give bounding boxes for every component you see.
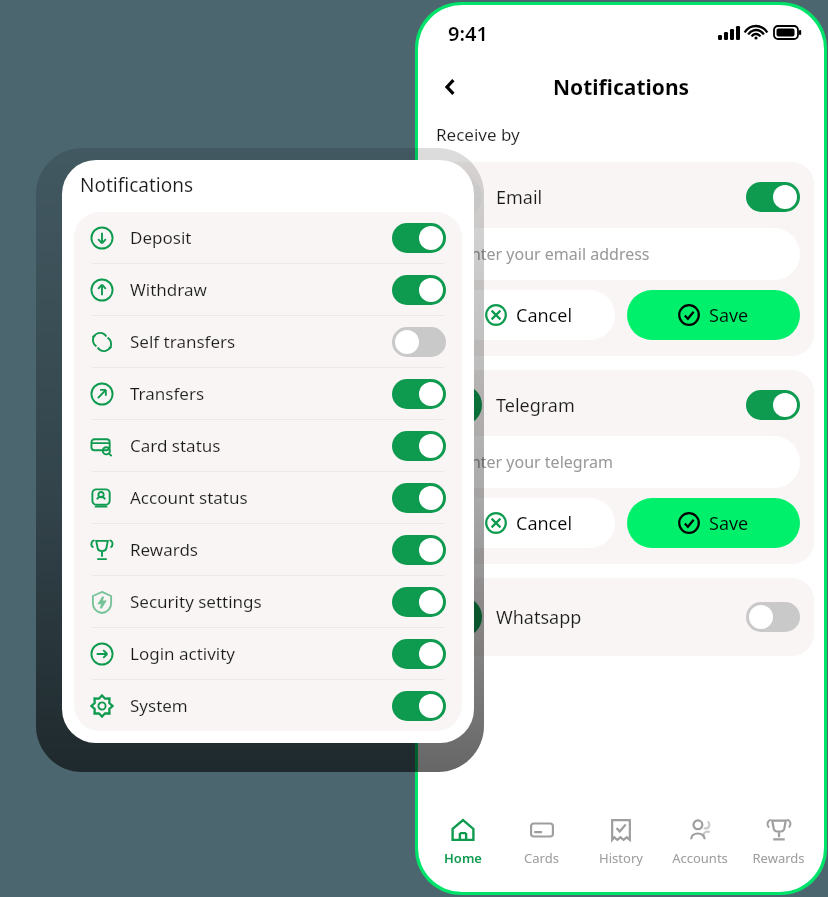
button[interactable]: Telegram — [442, 382, 800, 428]
staticText: Transfers — [130, 382, 205, 405]
staticText: Login activity — [130, 642, 236, 665]
staticText: Save — [709, 511, 749, 536]
button[interactable]: Email — [442, 174, 800, 220]
button[interactable]: On — [392, 275, 446, 305]
button[interactable]: Whatsapp — [428, 578, 814, 656]
staticText: Accounts — [672, 849, 728, 867]
button[interactable]: On — [392, 223, 446, 253]
button[interactable]: Rewards — [74, 524, 462, 575]
staticText: Rewards — [130, 538, 198, 561]
staticText: Cancel — [516, 511, 573, 536]
staticText: 9:41 — [448, 20, 488, 47]
button[interactable]: Off — [746, 602, 800, 632]
staticText: Rewards — [752, 849, 805, 867]
staticText: Cards — [524, 849, 559, 867]
staticText: Enter your email address — [462, 243, 650, 265]
button[interactable]: Off — [392, 327, 446, 357]
staticText: Notifications — [553, 73, 690, 102]
button[interactable]: Account status — [74, 472, 462, 523]
staticText: Card status — [130, 434, 221, 457]
staticText: Security settings — [130, 590, 262, 613]
button[interactable]: On — [392, 483, 446, 513]
staticText: History — [599, 849, 643, 867]
button[interactable]: Cards — [502, 806, 581, 878]
button[interactable]: System — [74, 680, 462, 731]
staticText: Notifications — [80, 172, 194, 198]
button[interactable]: Deposit — [74, 212, 462, 263]
staticText: Cancel — [516, 303, 573, 328]
staticText: Deposit — [130, 226, 192, 249]
staticText: Save — [709, 303, 749, 328]
button[interactable]: On — [392, 535, 446, 565]
button[interactable]: On — [746, 182, 800, 212]
staticText: Email — [496, 185, 543, 210]
staticText: Self transfers — [130, 330, 236, 353]
button[interactable]: Login activity — [74, 628, 462, 679]
staticText: Enter your telegram — [462, 451, 613, 473]
button[interactable]: On — [392, 379, 446, 409]
button[interactable]: Enter your telegram — [442, 436, 800, 488]
button[interactable]: Back — [430, 66, 472, 108]
button[interactable]: On — [746, 390, 800, 420]
staticText: Withdraw — [130, 278, 207, 301]
button[interactable]: Accounts — [660, 806, 739, 878]
button[interactable]: On — [392, 587, 446, 617]
button[interactable]: Cancel — [442, 498, 615, 548]
staticText: Receive by — [436, 123, 520, 146]
staticText: Account status — [130, 486, 248, 509]
staticText: Home — [444, 849, 482, 867]
button[interactable]: Self transfers — [74, 316, 462, 367]
button[interactable]: Home — [424, 806, 502, 878]
staticText: System — [130, 694, 188, 717]
button[interactable]: Withdraw — [74, 264, 462, 315]
button[interactable]: Card status — [74, 420, 462, 471]
button[interactable]: On — [392, 431, 446, 461]
staticText: Telegram — [496, 393, 575, 418]
button[interactable]: On — [392, 691, 446, 721]
button[interactable]: Save — [627, 290, 800, 340]
button[interactable]: History — [581, 806, 660, 878]
button[interactable]: Cancel — [442, 290, 615, 340]
button[interactable]: Save — [627, 498, 800, 548]
button[interactable]: Enter your email address — [442, 228, 800, 280]
button[interactable]: Transfers — [74, 368, 462, 419]
staticText: Whatsapp — [496, 605, 582, 630]
button[interactable]: Security settings — [74, 576, 462, 627]
button[interactable]: On — [392, 639, 446, 669]
button[interactable]: Rewards — [739, 806, 818, 878]
